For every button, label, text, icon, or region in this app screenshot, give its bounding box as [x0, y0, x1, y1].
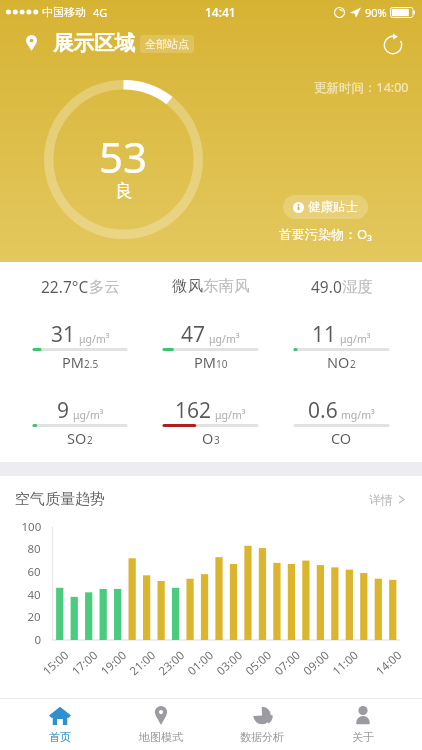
staticText: 49.0 [311, 276, 342, 297]
staticText: 中国移动 [42, 5, 86, 19]
staticText: SO [67, 428, 87, 448]
staticText: 空气质量趋势 [15, 490, 105, 509]
staticText: 31 [51, 320, 76, 349]
staticText: 3 [214, 433, 220, 447]
staticText: 4G [93, 5, 108, 20]
staticText: 全部站点 [145, 37, 189, 51]
staticText: 详情 [369, 492, 393, 507]
staticText: 关于 [352, 730, 374, 744]
staticText: μg/m³ [340, 332, 371, 346]
staticText: 多云 [89, 277, 120, 297]
staticText: 2 [87, 433, 93, 447]
staticText: 健康贴士 [308, 199, 358, 215]
staticText: 0.6 [308, 396, 338, 425]
staticText: 9 [57, 396, 70, 425]
staticText: CO [331, 428, 352, 448]
staticText: NO [327, 352, 350, 372]
staticText: 90% [365, 5, 387, 20]
button[interactable]: 全部站点 [140, 35, 194, 53]
button[interactable]: 详情 [365, 486, 410, 513]
staticText: 地图模式 [139, 730, 183, 744]
staticText: 首要污染物：O₃ [279, 225, 372, 243]
staticText: 22.7°C [41, 276, 89, 297]
staticText: 10 [216, 357, 228, 371]
staticText: PM [194, 352, 216, 372]
staticText: 良 [115, 180, 133, 203]
staticText: 展示区域 [53, 30, 135, 56]
staticText: 东南风 [203, 276, 250, 296]
staticText: PM [62, 352, 84, 372]
staticText: μg/m³ [209, 332, 240, 346]
staticText: 14:41 [205, 4, 236, 20]
staticText: 11 [312, 320, 337, 349]
staticText: 数据分析 [240, 730, 284, 744]
button[interactable]: 首页 [9, 699, 110, 750]
staticText: μg/m³ [73, 408, 104, 422]
staticText: 53 [99, 128, 148, 185]
staticText: 2 [350, 357, 356, 371]
staticText: 微风 [172, 276, 203, 296]
staticText: 湿度 [342, 277, 373, 297]
staticText: μg/m³ [79, 332, 110, 346]
staticText: 更新时间：14:00 [314, 79, 409, 96]
staticText: 47 [181, 320, 206, 349]
button[interactable]: 关于 [312, 699, 413, 750]
button[interactable]: Refresh [376, 26, 410, 60]
button[interactable]: 健康贴士 [283, 195, 368, 219]
staticText: 2.5 [84, 357, 99, 371]
staticText: mg/m³ [341, 408, 375, 422]
staticText: 162 [175, 396, 212, 425]
staticText: O [202, 428, 214, 448]
button[interactable]: 地图模式 [110, 699, 211, 750]
staticText: 首页 [49, 730, 71, 744]
button[interactable]: 数据分析 [211, 699, 312, 750]
staticText: μg/m³ [215, 408, 246, 422]
